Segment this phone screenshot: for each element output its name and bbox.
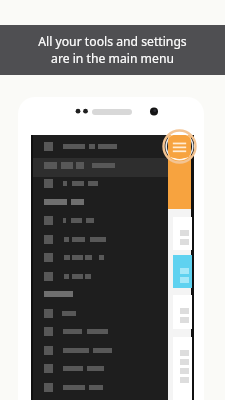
- button[interactable]: Open main menu: [162, 129, 197, 164]
- button[interactable]: [173, 295, 192, 329]
- button[interactable]: [33, 306, 168, 325]
- button[interactable]: [33, 139, 168, 158]
- button[interactable]: [33, 287, 168, 306]
- button[interactable]: [33, 250, 168, 269]
- button[interactable]: [33, 195, 168, 214]
- button[interactable]: [173, 217, 192, 250]
- button[interactable]: [33, 213, 168, 232]
- staticText: All your tools and settings are in the m…: [38, 33, 187, 67]
- button[interactable]: [173, 337, 192, 400]
- button[interactable]: [33, 269, 168, 288]
- button[interactable]: [33, 176, 168, 195]
- button[interactable]: [33, 324, 168, 343]
- button[interactable]: [173, 255, 192, 288]
- button[interactable]: [33, 158, 168, 177]
- button[interactable]: [33, 343, 168, 362]
- button[interactable]: [33, 361, 168, 380]
- button[interactable]: [33, 380, 168, 399]
- button[interactable]: [33, 232, 168, 251]
